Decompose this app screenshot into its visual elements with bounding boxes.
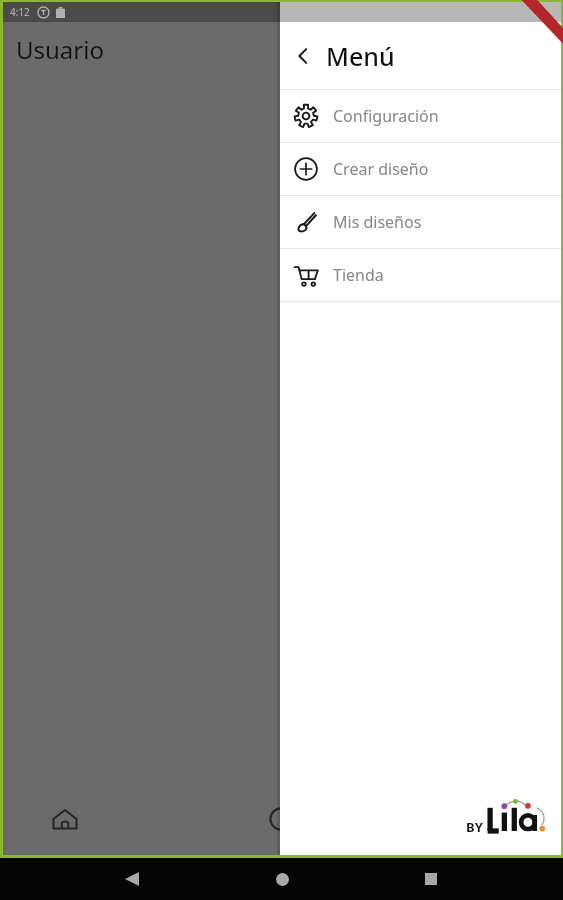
staticText: Usuario <box>16 33 104 66</box>
button[interactable]: Tienda <box>280 249 561 301</box>
button[interactable]: Configuración <box>280 90 561 142</box>
button[interactable]: Crear diseño <box>280 143 561 195</box>
staticText: Configuración <box>333 105 439 127</box>
staticText: 4:12 <box>10 5 30 19</box>
staticText: Mis diseños <box>333 211 422 233</box>
button[interactable]: Recent apps <box>413 861 449 897</box>
staticText: Menú <box>326 39 395 73</box>
button[interactable]: Mis diseños <box>280 196 561 248</box>
other: Back <box>290 43 316 69</box>
button[interactable]: Back <box>280 22 561 89</box>
button[interactable]: Home <box>49 803 81 835</box>
button[interactable]: Back <box>114 861 150 897</box>
button[interactable]: Home <box>264 861 300 897</box>
staticText: BY <box>466 818 483 836</box>
button[interactable]: Designs <box>265 803 297 835</box>
staticText: Crear diseño <box>333 158 429 180</box>
staticText: Tienda <box>333 264 384 286</box>
